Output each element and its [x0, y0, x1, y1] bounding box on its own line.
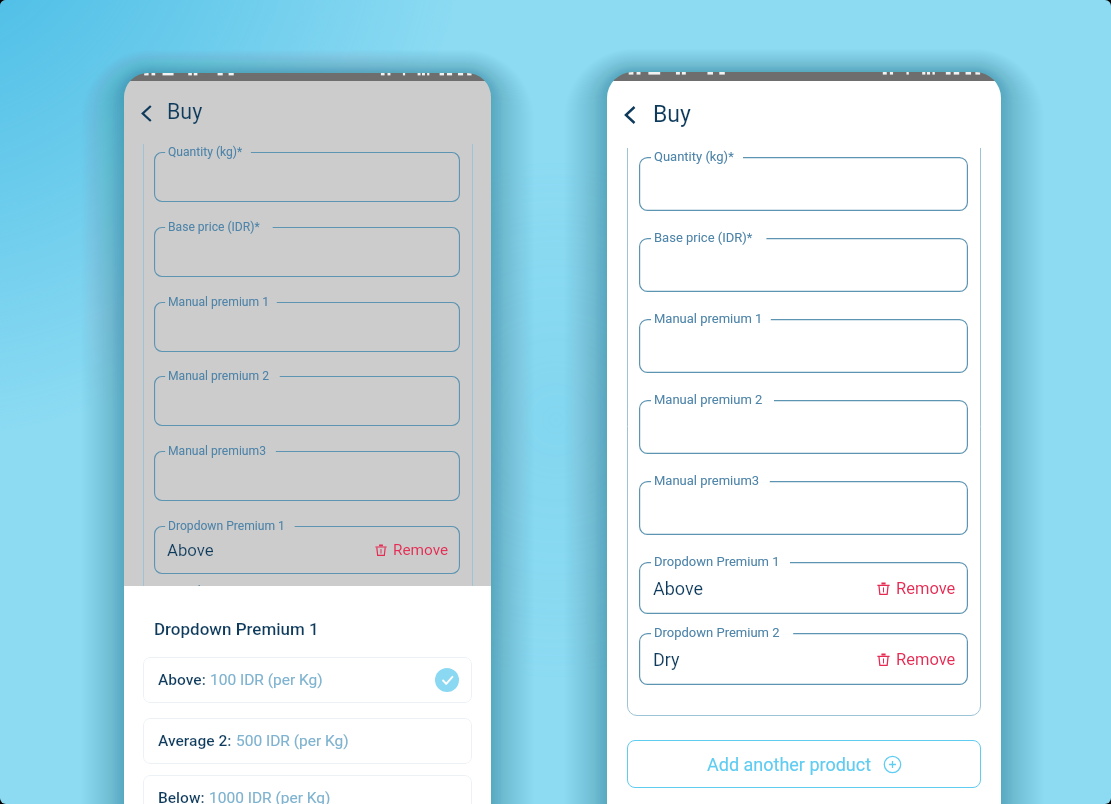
- staticText: Dropdown Premium 1: [154, 619, 319, 639]
- staticText: Base price (IDR)*: [168, 220, 260, 234]
- button[interactable]: Back: [130, 96, 164, 130]
- staticText: 1000 IDR (per Kg): [209, 789, 331, 804]
- staticText: Remove: [393, 541, 449, 559]
- staticText: Remove: [896, 579, 956, 598]
- staticText: Manual premium3: [654, 473, 760, 488]
- staticText: Above: [167, 540, 214, 560]
- staticText: Buy: [653, 101, 691, 128]
- staticText: Remove: [896, 650, 956, 669]
- staticText: Add another product: [218, 702, 371, 722]
- staticText: Dropdown Premium 2: [168, 584, 285, 598]
- button[interactable]: Back: [613, 97, 649, 133]
- staticText: Manual premium3: [168, 444, 266, 458]
- staticText: Manual premium 1: [168, 295, 269, 309]
- staticText: Dropdown Premium 1: [654, 554, 780, 569]
- staticText: Above:: [158, 671, 210, 689]
- staticText: Base price (IDR)*: [654, 230, 753, 245]
- staticText: Manual premium 1: [654, 311, 763, 326]
- button[interactable]: Remove: [877, 579, 956, 598]
- button[interactable]: Remove: [375, 541, 449, 559]
- staticText: Add another product: [707, 754, 872, 775]
- button[interactable]: Average 2:: [143, 718, 472, 764]
- staticText: Quantity (kg)*: [168, 145, 243, 159]
- staticText: 100 IDR (per Kg): [210, 671, 323, 689]
- staticText: Dropdown Premium 2: [654, 625, 780, 640]
- button[interactable]: Below:: [143, 775, 472, 804]
- staticText: Average 2:: [158, 732, 236, 750]
- staticText: Above: [653, 578, 704, 599]
- staticText: Quantity (kg)*: [654, 149, 734, 164]
- button[interactable]: Add another product: [143, 690, 473, 734]
- staticText: Manual premium 2: [168, 369, 269, 383]
- staticText: Dry: [653, 649, 680, 670]
- staticText: 500 IDR (per Kg): [236, 732, 349, 750]
- button[interactable]: Above:: [143, 657, 472, 703]
- staticText: Dropdown Premium 1: [168, 519, 285, 533]
- staticText: Buy: [167, 99, 203, 124]
- button[interactable]: Remove: [877, 650, 956, 669]
- staticText: Manual premium 2: [654, 392, 763, 407]
- staticText: Below:: [158, 789, 209, 804]
- button[interactable]: Add another product: [627, 740, 981, 788]
